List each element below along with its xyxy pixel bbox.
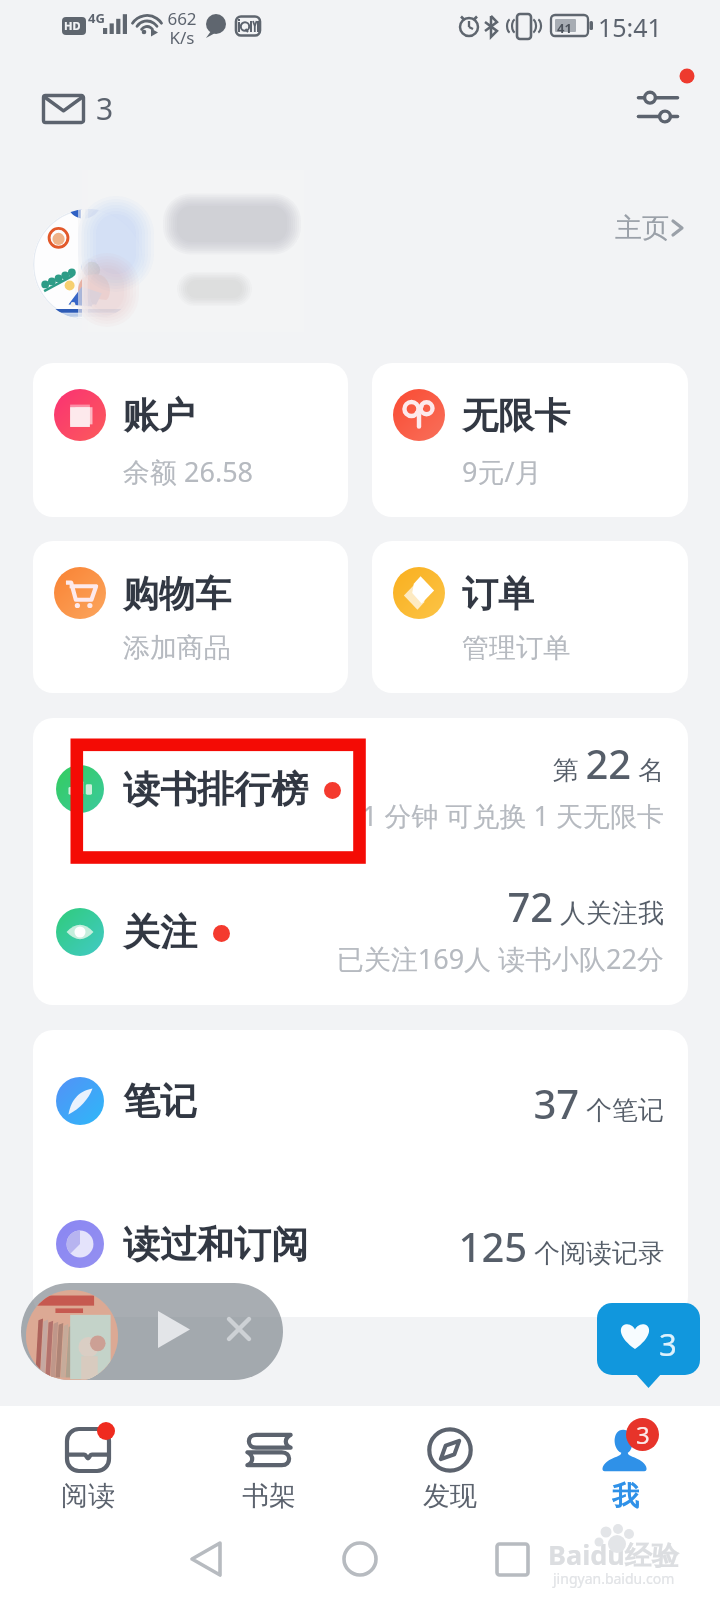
button[interactable]: 关注 [33,861,688,1004]
button[interactable]: 读过和订阅 [33,1173,688,1316]
button[interactable]: 订单 [372,541,688,693]
staticText: HD [64,18,81,33]
button[interactable]: 读书排行榜 [33,718,688,861]
button[interactable]: 无限卡 [372,363,688,517]
staticText: 15:41 [598,10,662,44]
button[interactable]: Likes 3 [597,1303,700,1388]
staticText: 添加商品 [123,631,231,665]
staticText: 订单 [462,571,534,616]
staticText: 书架 [242,1479,296,1511]
staticText: 9元/月 [462,453,542,490]
button[interactable]: 3 [42,88,114,129]
button[interactable]: 3 [580,1411,670,1511]
staticText: 37 个笔记 [33,1076,664,1124]
staticText: 阅读 [61,1479,115,1511]
button[interactable] [33,209,144,320]
button[interactable]: Settings [628,62,698,132]
staticText: 笔记 [123,1078,197,1125]
staticText: 1 分钟 可兑换 1 天无限卡 [33,797,664,834]
staticText: 3 [659,1323,677,1365]
button[interactable]: 账户 [33,363,348,517]
button[interactable]: Back [186,1538,226,1578]
staticText: 购物车 [123,571,231,616]
staticText: 41 [557,19,572,37]
staticText: 主页 [615,211,669,245]
staticText: 读书排行榜 [123,766,308,813]
button[interactable]: Home [342,1538,380,1576]
staticText: 无限卡 [462,393,570,438]
button[interactable]: 购物车 [33,541,348,693]
button[interactable]: 阅读 [43,1411,133,1511]
staticText: 72 人关注我 [33,879,664,927]
button[interactable]: 笔记 [33,1030,688,1173]
staticText: 关注 [123,909,197,956]
staticText: jingyan.baidu.com [553,1569,675,1588]
staticText: 发现 [423,1479,477,1511]
staticText: 管理订单 [462,631,570,665]
button[interactable]: 发现 [405,1411,495,1511]
other: Close player [229,1319,249,1339]
staticText: 已关注169人 读书小队22分 [33,940,664,977]
staticText: 读过和订阅 [123,1221,308,1268]
button[interactable]: 主页 [615,211,685,245]
button[interactable]: 书架 [224,1411,314,1511]
staticText: 账户 [123,393,195,438]
staticText: 3 [96,88,114,129]
button[interactable]: Recents [494,1538,534,1578]
staticText: 我 [612,1479,639,1511]
staticText: 125 个阅读记录 [33,1219,664,1267]
staticText: Baidu经验 [548,1536,679,1573]
staticText: 4G [88,9,105,27]
staticText: 第 22 名 [33,736,664,784]
button[interactable]: Close player [21,1283,283,1380]
staticText: 余额 26.58 [123,453,254,490]
staticText: 662 K/s [167,7,197,49]
staticText: 3 [636,1418,650,1451]
